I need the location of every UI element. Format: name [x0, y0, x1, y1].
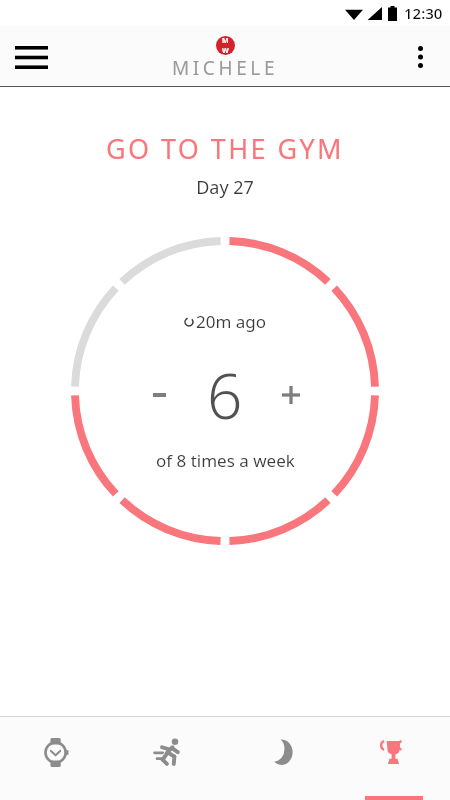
staticText: W — [222, 46, 229, 55]
button[interactable]: Decrease count — [135, 371, 183, 419]
staticText: GO TO THE GYM — [0, 130, 450, 167]
staticText: Day 27 — [0, 175, 450, 200]
button[interactable]: Watch — [0, 717, 112, 800]
button[interactable]: Open navigation menu — [4, 30, 58, 84]
button[interactable]: More options — [396, 33, 444, 81]
button[interactable]: Activity — [112, 717, 224, 800]
button[interactable]: Sleep — [224, 717, 337, 800]
button[interactable]: Increase count — [267, 371, 315, 419]
staticText: 6 — [207, 353, 243, 437]
staticText: 20m ago — [196, 310, 267, 333]
staticText: of 8 times a week — [156, 449, 295, 472]
button[interactable]: Goals — [337, 717, 450, 800]
staticText: MICHELE — [172, 55, 279, 81]
staticText: M — [222, 36, 229, 46]
staticText: 12:30 — [404, 3, 443, 23]
